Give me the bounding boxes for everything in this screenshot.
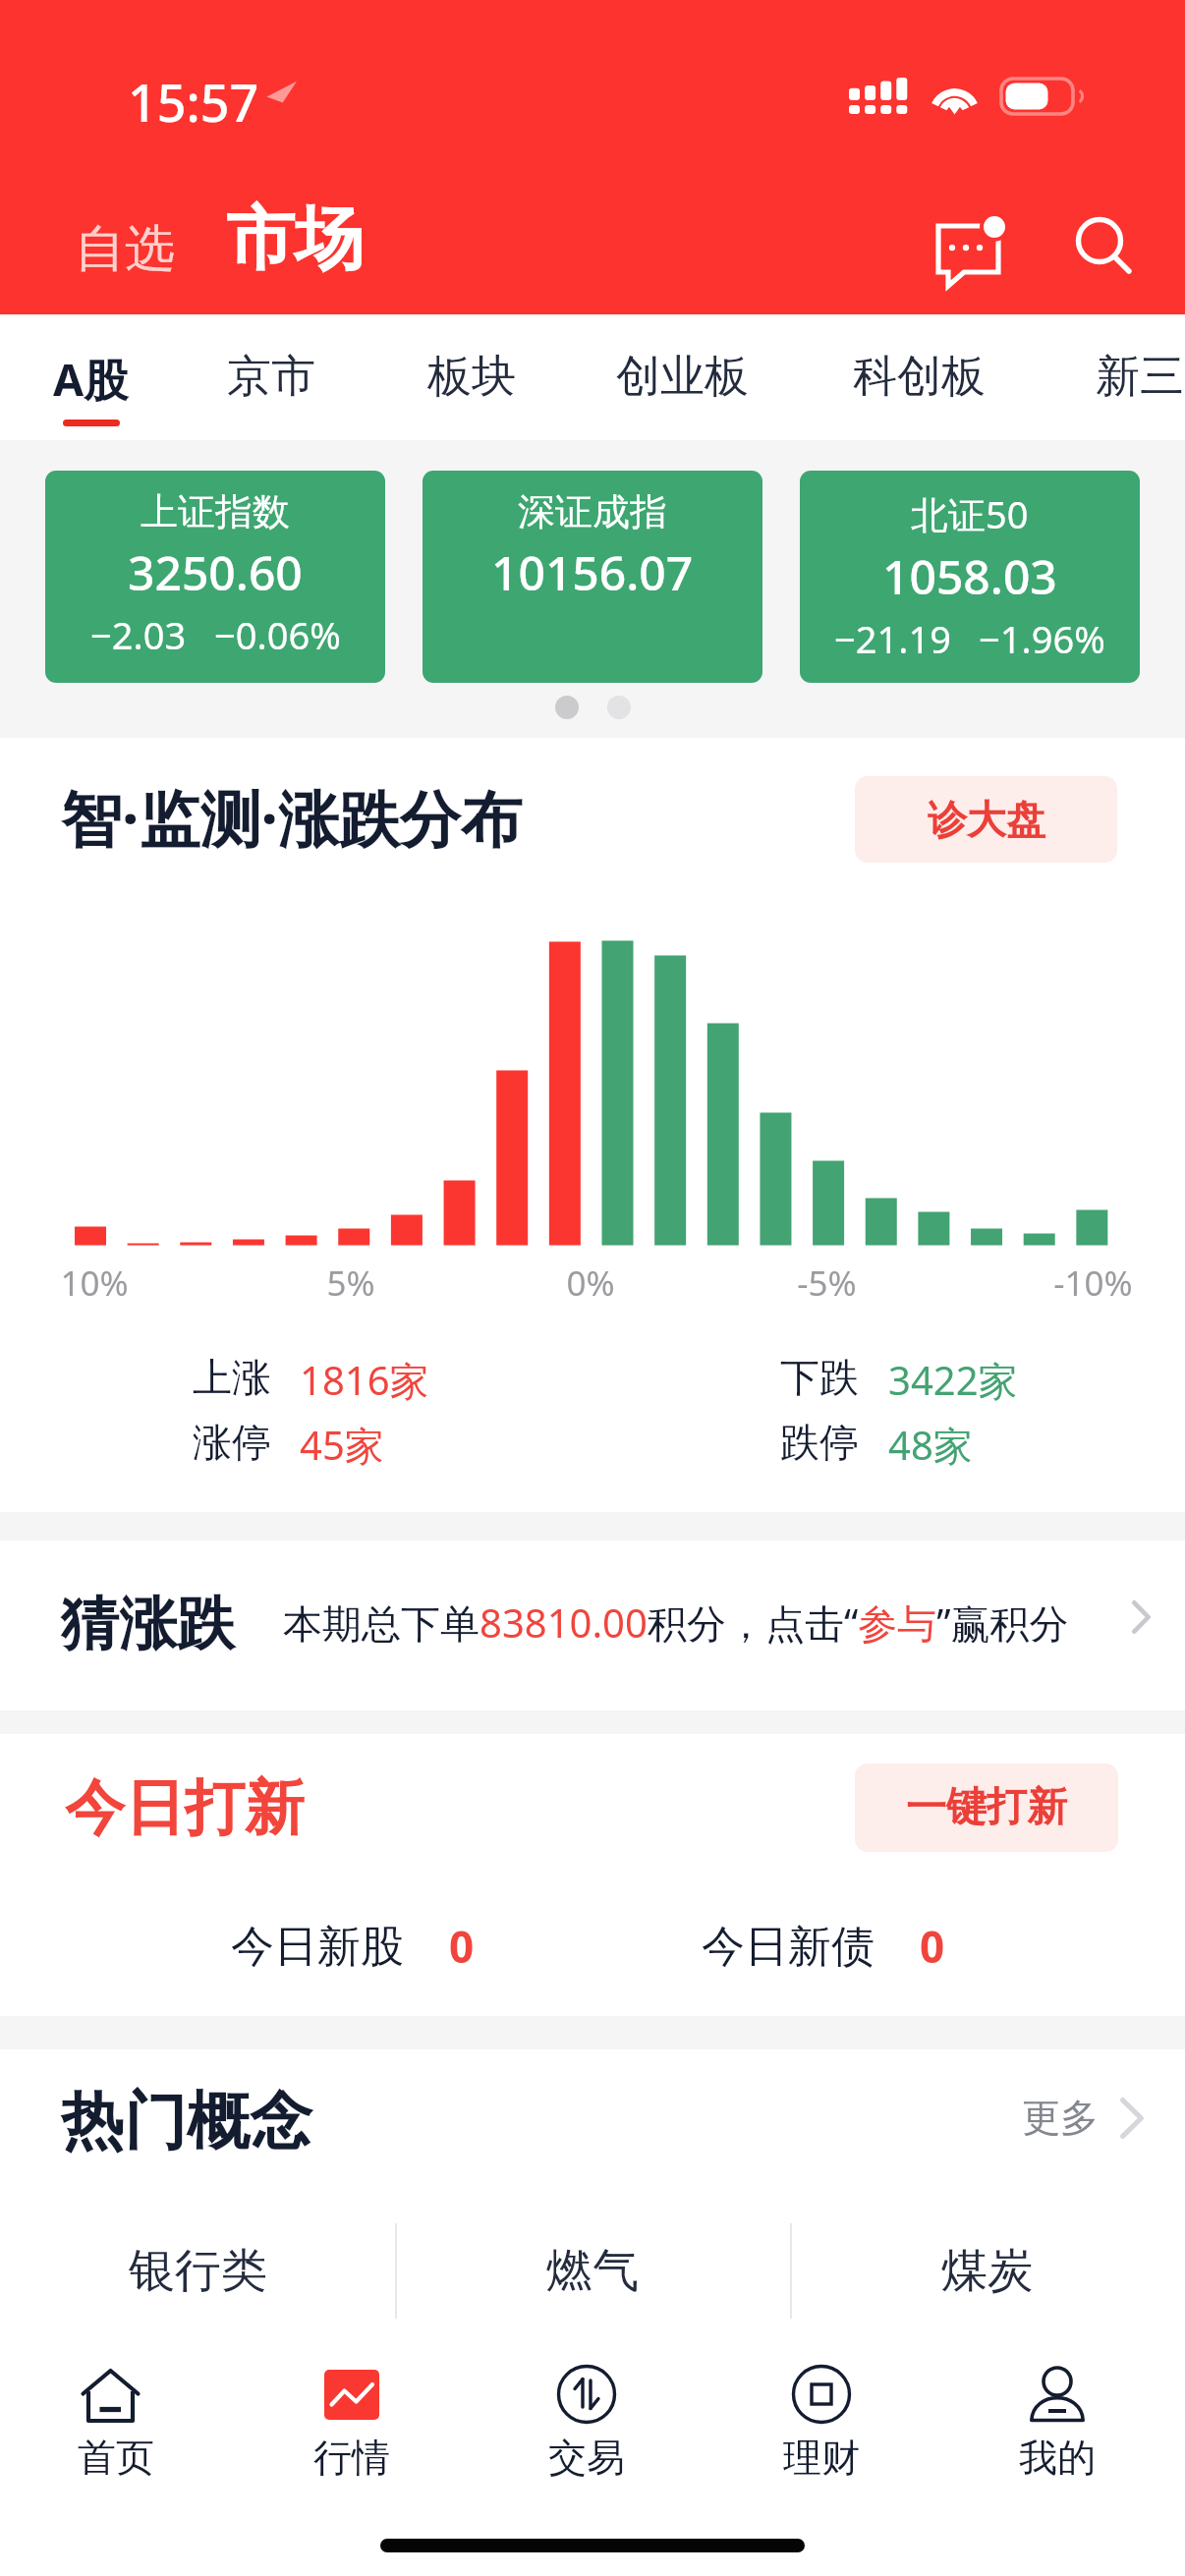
button[interactable]: 科创板 (819, 314, 1022, 440)
staticText: 北证50 (911, 488, 1029, 539)
button[interactable]: A股 (20, 314, 177, 440)
staticText: 5% (326, 1260, 375, 1307)
button[interactable]: 我的 (939, 2361, 1174, 2482)
staticText: 3422家 (888, 1353, 1018, 1407)
staticText: −21.19 (834, 613, 951, 664)
staticText: 板块 (427, 349, 516, 405)
staticText: 下跌 (780, 1353, 859, 1402)
staticText: 创业板 (616, 349, 749, 405)
staticText: 银行类 (129, 2242, 267, 2300)
staticText: 更多 (1022, 2094, 1099, 2142)
button[interactable]: 煤炭 (790, 2223, 1185, 2319)
button[interactable]: 今日新债 (702, 1911, 945, 1982)
button[interactable]: 创业板 (583, 314, 785, 440)
staticText: 10% (60, 1260, 129, 1307)
staticText: 今日新股 (231, 1920, 404, 1974)
staticText: 0 (449, 1917, 475, 1976)
staticText: 一键打新 (906, 1782, 1067, 1833)
button[interactable]: 理财 (704, 2361, 938, 2482)
staticText: 深证成指 (518, 488, 667, 535)
button[interactable]: 自选 (65, 207, 185, 290)
staticText: -10% (1053, 1260, 1133, 1307)
button[interactable]: 猜涨跌 (0, 1540, 1185, 1710)
staticText: 燃气 (546, 2242, 639, 2300)
button[interactable]: 诊大盘 (855, 776, 1117, 863)
staticText: 热门概念 (61, 2082, 312, 2161)
staticText: 1058.03 (882, 544, 1057, 608)
staticText: 3250.60 (128, 540, 303, 604)
staticText: 诊大盘 (928, 795, 1045, 844)
staticText: 0 (920, 1917, 945, 1976)
staticText: 自选 (75, 217, 175, 280)
staticText: 1816家 (300, 1353, 429, 1407)
button[interactable]: 今日新股 (231, 1911, 475, 1982)
staticText: 科创板 (853, 349, 986, 405)
staticText: 京市 (227, 349, 315, 405)
staticText: 首页 (78, 2434, 154, 2482)
staticText: 45家 (300, 1418, 384, 1472)
staticText: 上涨 (193, 1353, 271, 1402)
staticText: 行情 (313, 2434, 390, 2482)
staticText: 煤炭 (941, 2242, 1034, 2300)
button[interactable]: Search (1053, 196, 1148, 291)
button[interactable]: 一键打新 (855, 1764, 1118, 1852)
button[interactable]: 市场 (216, 187, 373, 293)
staticText: 理财 (783, 2434, 860, 2482)
staticText: 本期总下单83810.00积分，点击“参与”赢积分 (283, 1596, 1069, 1650)
staticText: 今日打新 (65, 1770, 305, 1846)
button[interactable]: 上证指数 (45, 471, 385, 683)
button[interactable]: 京市 (194, 314, 351, 440)
staticText: 今日新债 (702, 1920, 875, 1974)
staticText: 新三 (1096, 349, 1184, 405)
staticText: 48家 (888, 1418, 973, 1472)
staticText: -5% (797, 1260, 857, 1307)
button[interactable]: Messages (922, 196, 1016, 291)
staticText: 智·监测·涨跌分布 (61, 776, 522, 860)
staticText: 10156.07 (491, 540, 694, 604)
button[interactable]: 交易 (469, 2361, 704, 2482)
staticText: 0% (566, 1260, 615, 1307)
button[interactable]: 行情 (234, 2361, 469, 2482)
staticText: 我的 (1019, 2434, 1096, 2482)
staticText: A股 (53, 349, 129, 409)
staticText: 15:57 (128, 67, 259, 137)
staticText: 交易 (548, 2434, 625, 2482)
staticText: 上证指数 (141, 488, 290, 535)
button[interactable]: 更多 (1022, 2094, 1144, 2142)
button[interactable]: 燃气 (395, 2223, 790, 2319)
button[interactable]: 新三 (1062, 314, 1185, 440)
staticText: 跌停 (780, 1418, 859, 1467)
staticText: −2.03 (90, 609, 187, 660)
staticText: −0.06% (214, 609, 341, 660)
staticText: 涨停 (193, 1418, 271, 1467)
button[interactable]: 首页 (0, 2361, 233, 2482)
button[interactable]: 深证成指 (423, 471, 762, 683)
button[interactable]: 板块 (394, 314, 551, 440)
staticText: 猜涨跌 (61, 1588, 235, 1660)
button[interactable]: 银行类 (0, 2223, 395, 2319)
button[interactable]: 北证50 (800, 471, 1140, 683)
staticText: −1.96% (979, 613, 1105, 664)
staticText: 市场 (226, 196, 364, 283)
